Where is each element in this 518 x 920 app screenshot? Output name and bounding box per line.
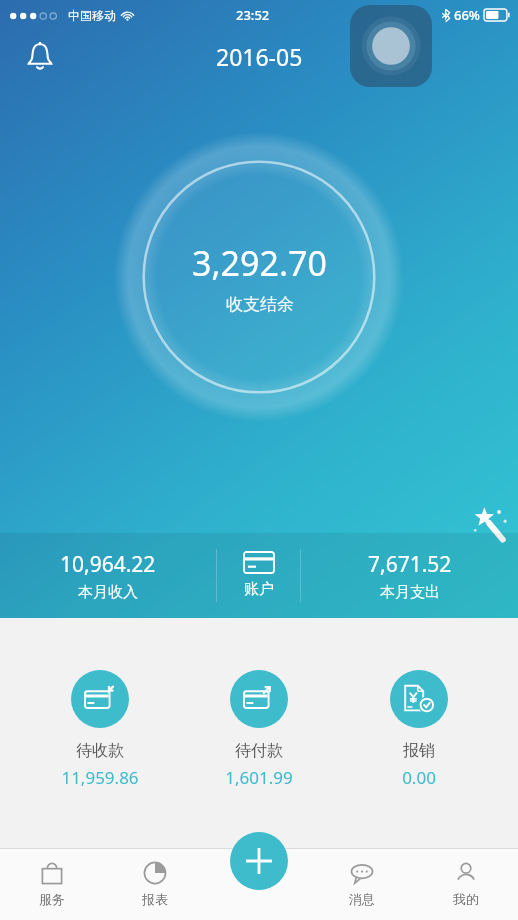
button[interactable]: 我的 xyxy=(414,848,518,920)
staticText: 消息 xyxy=(349,891,375,907)
button[interactable]: 服务 xyxy=(0,848,103,920)
staticText: 3,292.70 xyxy=(192,240,327,286)
button[interactable]: 报销 xyxy=(359,670,479,789)
staticText: 66% xyxy=(454,6,480,24)
staticText: 0.00 xyxy=(402,766,436,789)
staticText: 10,964.22 xyxy=(60,550,156,579)
staticText: 报表 xyxy=(142,891,168,907)
button[interactable]: 待收款 xyxy=(40,670,160,789)
staticText: 本月收入 xyxy=(78,583,138,602)
staticText: 7,671.52 xyxy=(368,550,452,579)
button[interactable]: Add xyxy=(230,832,288,890)
button[interactable]: 7,671.52 xyxy=(301,533,518,618)
staticText: 本月支出 xyxy=(380,583,440,602)
staticText: 服务 xyxy=(39,891,65,907)
staticText: 1,601.99 xyxy=(225,766,293,789)
button[interactable]: Magic xyxy=(466,500,512,546)
staticText: 报销 xyxy=(403,741,435,761)
staticText: 2016-05 xyxy=(216,41,303,72)
staticText: 待收款 xyxy=(76,741,124,761)
staticText: 11,959.86 xyxy=(61,766,139,789)
button[interactable]: 10,964.22 xyxy=(0,533,216,618)
staticText: 待付款 xyxy=(235,741,283,761)
button[interactable]: 账户 xyxy=(217,533,300,618)
button[interactable]: 报表 xyxy=(103,848,206,920)
button[interactable]: 待付款 xyxy=(199,670,319,789)
button[interactable]: Assistive touch xyxy=(350,5,432,87)
staticText: 23:52 xyxy=(236,6,270,24)
staticText: 我的 xyxy=(453,891,479,907)
staticText: 账户 xyxy=(244,580,274,599)
staticText: 收支结余 xyxy=(226,294,294,315)
staticText: 中国移动 xyxy=(68,8,116,23)
button[interactable]: Notifications xyxy=(16,32,64,80)
button[interactable]: 消息 xyxy=(310,848,414,920)
